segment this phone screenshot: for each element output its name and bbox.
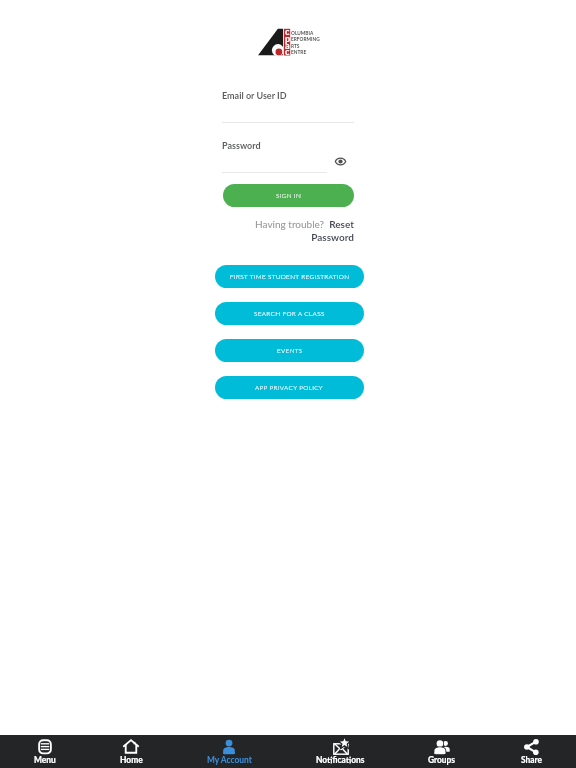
staticText: Email or User ID <box>222 90 287 101</box>
button[interactable]: Menu <box>0 735 89 768</box>
staticText: Having trouble? Reset Password <box>222 218 354 243</box>
staticText: Share <box>521 755 543 765</box>
button[interactable]: SIGN IN <box>223 184 354 207</box>
button[interactable]: Having trouble? Reset Password <box>222 218 354 243</box>
staticText: ERFORMING <box>291 36 320 42</box>
staticText: ENTRE <box>291 49 307 55</box>
button[interactable]: Home <box>89 735 173 768</box>
staticText: SIGN IN <box>276 192 302 200</box>
staticText: a <box>285 40 290 51</box>
staticText: Menu <box>34 755 56 765</box>
staticText: Home <box>120 755 143 765</box>
staticText: APP PRIVACY POLICY <box>255 384 324 392</box>
staticText: Groups <box>428 755 456 765</box>
staticText: c <box>285 46 290 57</box>
staticText: Notifications <box>316 755 365 765</box>
staticText: EVENTS <box>277 347 303 355</box>
staticText: My Account <box>207 755 252 765</box>
staticText: p <box>285 33 291 44</box>
button[interactable]: Groups <box>396 735 487 768</box>
button[interactable]: My Account <box>173 735 285 768</box>
staticText: OLUMBIA <box>291 30 314 36</box>
button[interactable]: Share <box>487 735 576 768</box>
staticText: Password <box>222 140 261 151</box>
button[interactable]: FIRST TIME STUDENT REGISTRATION <box>215 265 364 288</box>
button[interactable]: Email or User ID <box>222 88 354 123</box>
button[interactable]: SEARCH FOR A CLASS <box>215 302 364 325</box>
staticText: RTS <box>291 43 300 49</box>
staticText: c <box>285 26 290 37</box>
staticText: SEARCH FOR A CLASS <box>254 310 325 318</box>
button[interactable]: Show password <box>332 153 349 170</box>
button[interactable]: EVENTS <box>215 339 364 362</box>
button[interactable]: Notifications <box>285 735 396 768</box>
button[interactable]: Password <box>222 138 354 173</box>
other: Show password <box>335 156 346 167</box>
staticText: FIRST TIME STUDENT REGISTRATION <box>230 273 350 281</box>
button[interactable]: APP PRIVACY POLICY <box>215 376 364 399</box>
